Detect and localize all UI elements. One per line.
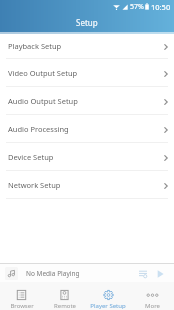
button[interactable]: Audio Output Setup: [0, 87, 174, 115]
staticText: Video Output Setup: [8, 68, 78, 78]
button[interactable]: Video Output Setup: [0, 59, 174, 87]
staticText: Audio Processing: [8, 124, 69, 134]
button[interactable]: Audio Processing: [0, 115, 174, 143]
staticText: Playback Setup: [8, 41, 62, 51]
button[interactable]: Browser: [0, 283, 43, 310]
staticText: Player Setup: [90, 302, 126, 310]
staticText: Audio Output Setup: [8, 96, 78, 106]
button[interactable]: Play: [154, 267, 167, 280]
staticText: Device Setup: [8, 152, 54, 162]
staticText: More: [145, 302, 160, 310]
button[interactable]: Network Setup: [0, 171, 174, 199]
staticText: Setup: [76, 17, 98, 28]
staticText: Network Setup: [8, 180, 61, 190]
button[interactable]: Playback Setup: [0, 32, 174, 59]
staticText: Remote: [54, 302, 76, 310]
button[interactable]: Device Setup: [0, 143, 174, 171]
button[interactable]: More: [130, 283, 174, 310]
button[interactable]: Playlist queue: [136, 267, 149, 280]
button[interactable]: Remote: [43, 283, 86, 310]
staticText: Browser: [10, 302, 34, 310]
staticText: No Media Playing: [26, 269, 80, 278]
staticText: 10:50: [151, 2, 171, 12]
button[interactable]: Player Setup: [86, 283, 130, 310]
staticText: 57%: [130, 2, 144, 12]
